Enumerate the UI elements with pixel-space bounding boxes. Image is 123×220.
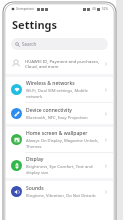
button[interactable]: HUAWEI ID [6, 53, 113, 74]
button[interactable]: Search [11, 38, 108, 50]
staticText: 4G [92, 7, 96, 11]
button[interactable]: Sounds [6, 181, 113, 202]
staticText: HUAWEI ID, Payment and purchases, Cloud,… [25, 58, 102, 70]
button[interactable]: Display [6, 153, 113, 178]
staticText: Bluetooth, NFC, Easy Projection [26, 115, 88, 121]
button[interactable]: Wireless & networks [6, 77, 113, 102]
other: HUAWEI ID [11, 59, 21, 69]
staticText: Wireless & networks [26, 80, 75, 87]
staticText: Wi-Fi, Dual SIM settings, Mobile network [26, 88, 102, 99]
staticText: Always On Display, Magazine Unlock, Them… [26, 138, 102, 149]
staticText: Sounds [26, 185, 44, 192]
staticText: Display [26, 156, 44, 163]
staticText: Ringtone, Vibration, Do Not Disturb [26, 193, 96, 199]
staticText: Settings [12, 17, 58, 32]
button[interactable]: Device connectivity [6, 103, 113, 124]
staticText: Device connectivity [26, 107, 72, 114]
staticText: 52% [102, 7, 108, 11]
staticText: Home screen & wallpaper [26, 130, 88, 137]
staticText: Unimportant [16, 7, 35, 11]
staticText: Brightness, Eye Comfort, Text and displa… [26, 164, 102, 175]
button[interactable]: Home screen & wallpaper [6, 127, 113, 152]
staticText: Search [22, 41, 37, 47]
